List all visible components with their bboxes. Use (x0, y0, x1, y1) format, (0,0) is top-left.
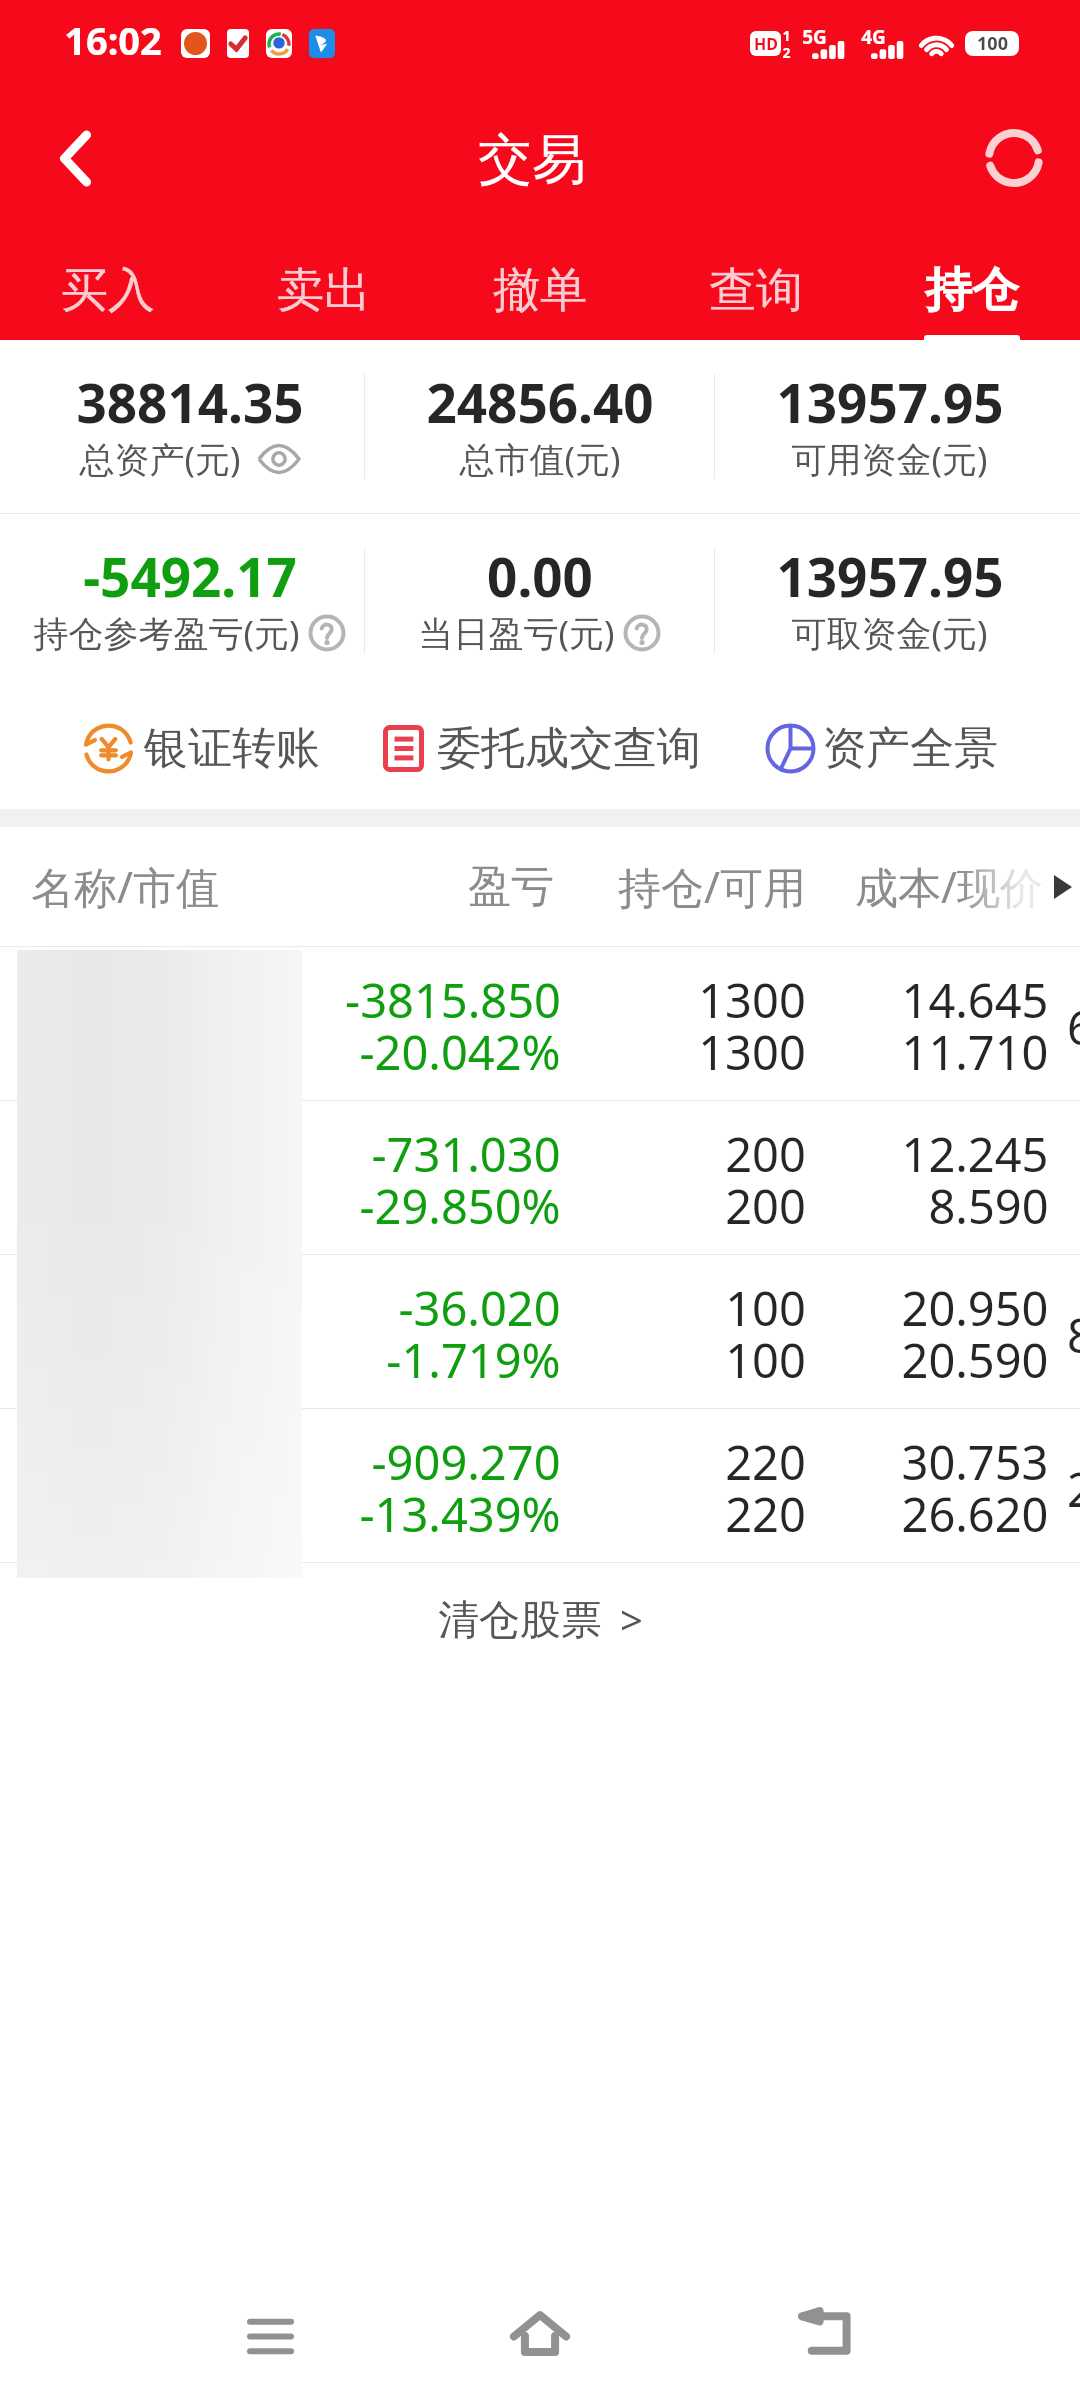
button[interactable]: Back (0, 88, 150, 228)
staticText: 当日盈亏(元) (418, 609, 615, 657)
staticText: 16:02 (64, 14, 162, 66)
staticText: 交易 (478, 126, 586, 194)
button[interactable]: Refresh (948, 88, 1080, 228)
staticText: HD (754, 33, 778, 55)
staticText: 8 (1067, 1303, 1080, 1367)
button[interactable]: 持仓 (864, 228, 1080, 340)
staticText: 买入 (61, 261, 155, 320)
staticText: 总市值(元) (459, 435, 621, 483)
staticText: 4G (861, 24, 886, 50)
staticText: 查询 (709, 261, 803, 320)
staticText: 清仓股票 (438, 1595, 602, 1647)
staticText: 8.590 (928, 1174, 1049, 1238)
button[interactable]: Back (745, 2266, 905, 2400)
staticText: 持仓参考盈亏(元) (33, 609, 300, 657)
button[interactable]: Recent apps (190, 2266, 350, 2400)
staticText: 银证转账 (144, 721, 320, 776)
staticText: 100 (977, 31, 1008, 56)
staticText: 26.620 (901, 1482, 1049, 1546)
staticText: 5G (802, 24, 827, 50)
staticText: 12.245 (901, 1122, 1049, 1186)
button[interactable]: -36.020 (0, 1255, 1080, 1408)
staticText: 6 (1067, 995, 1080, 1059)
staticText: -731.030 (371, 1122, 561, 1186)
staticText: 0.00 (487, 540, 593, 612)
staticText: 100 (725, 1328, 806, 1392)
button[interactable]: 银证转账 (82, 721, 320, 776)
staticText: 220 (725, 1430, 806, 1494)
staticText: > (620, 1592, 643, 1646)
button[interactable]: 清仓股票 (414, 1582, 667, 1660)
staticText: -5492.17 (83, 540, 297, 612)
staticText: 可用资金(元) (791, 435, 988, 483)
button[interactable]: 卖出 (216, 228, 432, 340)
button[interactable]: -909.270 (0, 1409, 1080, 1562)
staticText: 总资产(元) (79, 435, 241, 483)
button[interactable]: 委托成交查询 (383, 721, 701, 776)
staticText: 持仓 (925, 261, 1019, 320)
staticText: 卖出 (277, 261, 371, 320)
button[interactable]: 查询 (648, 228, 864, 340)
staticText: 200 (725, 1122, 806, 1186)
staticText: 1300 (698, 1020, 806, 1084)
staticText: 20.590 (901, 1328, 1049, 1392)
staticText: -20.042% (359, 1020, 561, 1084)
staticText: 200 (725, 1174, 806, 1238)
staticText: 1300 (698, 968, 806, 1032)
staticText: 14.645 (901, 968, 1049, 1032)
staticText: 1 (782, 26, 791, 45)
staticText: 2 (782, 43, 791, 62)
staticText: 13957.95 (776, 540, 1004, 612)
button[interactable]: 撤单 (432, 228, 648, 340)
staticText: 20.950 (901, 1276, 1049, 1340)
staticText: -36.020 (398, 1276, 561, 1340)
staticText: 24856.40 (426, 366, 654, 438)
staticText: -909.270 (371, 1430, 561, 1494)
staticText: 成本/现价 (855, 857, 1043, 916)
staticText: 38814.35 (76, 366, 304, 438)
button[interactable]: 买入 (0, 228, 216, 340)
staticText: 撤单 (493, 261, 587, 320)
staticText: 资产全景 (822, 721, 998, 776)
button[interactable]: -3815.850 (0, 947, 1080, 1100)
staticText: 30.753 (901, 1430, 1049, 1494)
staticText: -13.439% (359, 1482, 561, 1546)
staticText: 13957.95 (776, 366, 1004, 438)
staticText: -1.719% (386, 1328, 561, 1392)
button[interactable]: Home (460, 2266, 620, 2400)
button[interactable]: 资产全景 (765, 721, 998, 776)
staticText: 11.710 (901, 1020, 1049, 1084)
button[interactable]: -731.030 (0, 1101, 1080, 1254)
staticText: 持仓/可用 (618, 857, 806, 916)
staticText: -3815.850 (345, 968, 561, 1032)
staticText: 100 (725, 1276, 806, 1340)
staticText: -29.850% (359, 1174, 561, 1238)
staticText: 可取资金(元) (791, 609, 988, 657)
staticText: 委托成交查询 (437, 721, 701, 776)
staticText: 名称/市值 (31, 857, 219, 916)
staticText: 2 (1067, 1457, 1080, 1521)
staticText: 220 (725, 1482, 806, 1546)
staticText: 盈亏 (468, 860, 554, 914)
